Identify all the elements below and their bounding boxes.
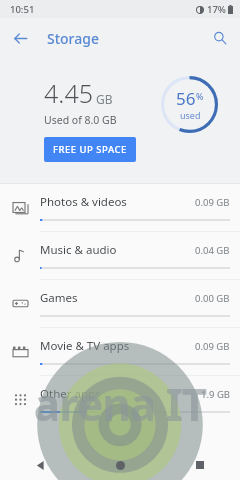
staticText: Games (40, 290, 195, 306)
staticText: Used of 8.0 GB (44, 113, 117, 127)
staticText: 17% (207, 3, 226, 16)
button[interactable]: Games (0, 280, 240, 327)
button[interactable]: Other apps (0, 376, 240, 423)
button[interactable]: Music & audio (0, 232, 240, 279)
staticText: GB (96, 91, 113, 107)
staticText: % (196, 90, 204, 102)
button[interactable]: Recent apps (160, 450, 240, 480)
button[interactable]: FREE UP SPACE (44, 137, 136, 162)
staticText: Other apps (40, 386, 201, 402)
button[interactable]: Movie & TV apps (0, 328, 240, 375)
staticText: used (180, 109, 201, 121)
staticText: 4.45 (44, 76, 93, 110)
staticText: 0.00 GB (195, 292, 230, 305)
staticText: Music & audio (40, 242, 195, 258)
button[interactable]: Photos & videos (0, 184, 240, 231)
button[interactable]: Search (205, 23, 235, 53)
button[interactable]: Home (80, 450, 160, 480)
button[interactable]: Back (5, 23, 35, 53)
staticText: 10:51 (10, 3, 35, 16)
staticText: Storage (47, 29, 99, 48)
staticText: 56 (176, 87, 196, 110)
button[interactable]: Back (0, 450, 80, 480)
staticText: FREE UP SPACE (53, 143, 127, 156)
staticText: 1.9 GB (201, 388, 230, 401)
staticText: 0.09 GB (195, 196, 230, 209)
staticText: Photos & videos (40, 194, 195, 210)
staticText: 0.09 GB (195, 340, 230, 353)
staticText: Movie & TV apps (40, 338, 195, 354)
staticText: arena IT (0, 374, 240, 434)
staticText: 0.04 GB (195, 244, 230, 257)
